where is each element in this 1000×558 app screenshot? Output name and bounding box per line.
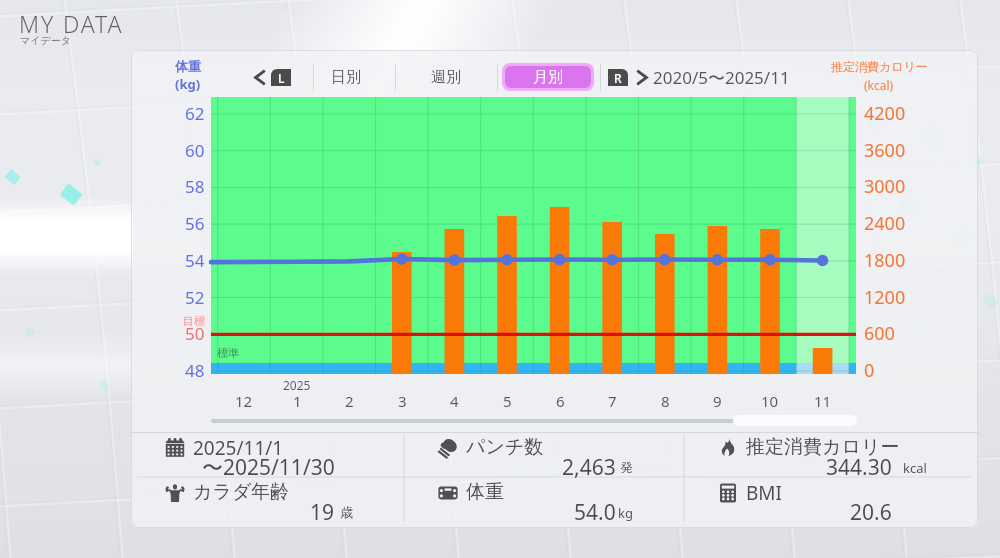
- button[interactable]: R button: [608, 69, 628, 86]
- staticText: 1: [293, 391, 302, 411]
- staticText: 48: [185, 359, 205, 381]
- staticText: 月別: [533, 68, 563, 87]
- staticText: kg: [618, 504, 633, 522]
- staticText: 9: [713, 391, 722, 411]
- staticText: 1200: [864, 285, 906, 307]
- button[interactable]: 日別: [305, 63, 387, 91]
- staticText: (kcal): [864, 77, 894, 93]
- button[interactable]: 体重: [404, 477, 684, 522]
- staticText: 体重: [466, 480, 504, 504]
- staticText: 10: [761, 391, 779, 411]
- staticText: BMI: [746, 480, 783, 506]
- button[interactable]: パンチ数: [404, 432, 684, 477]
- staticText: 11: [814, 391, 832, 411]
- staticText: 標準: [217, 346, 239, 360]
- button[interactable]: 月別: [505, 66, 591, 88]
- button[interactable]: BMI: [684, 477, 978, 522]
- staticText: 歳: [340, 504, 353, 520]
- staticText: 19: [310, 498, 335, 527]
- staticText: (kg): [175, 75, 201, 93]
- staticText: MY DATA: [19, 8, 124, 39]
- staticText: 7: [608, 391, 617, 411]
- button[interactable]: L button: [271, 69, 291, 86]
- staticText: 2025: [283, 377, 311, 393]
- staticText: 発: [620, 459, 633, 475]
- staticText: 3600: [864, 138, 906, 160]
- button[interactable]: Previous page: [252, 69, 268, 86]
- staticText: 56: [185, 212, 205, 234]
- button[interactable]: カラダ年齢: [131, 477, 404, 522]
- staticText: L: [278, 70, 285, 86]
- button[interactable]: 週別: [405, 63, 487, 91]
- staticText: 2: [345, 391, 354, 411]
- staticText: 日別: [331, 68, 361, 87]
- staticText: 推定消費カロリー: [746, 435, 900, 459]
- staticText: 2020/5〜2025/11: [653, 66, 790, 89]
- staticText: パンチ数: [466, 435, 544, 459]
- staticText: 344.30: [826, 453, 892, 482]
- staticText: 54.0: [574, 498, 616, 527]
- staticText: 〜2025/11/30: [202, 453, 335, 482]
- staticText: 4: [450, 391, 459, 411]
- staticText: 52: [185, 286, 205, 308]
- staticText: R: [614, 70, 622, 86]
- staticText: カラダ年齢: [193, 480, 290, 504]
- staticText: 54: [185, 249, 205, 271]
- staticText: kcal: [903, 459, 927, 477]
- staticText: マイデータ: [20, 34, 71, 47]
- staticText: 3000: [864, 174, 906, 196]
- staticText: 12: [235, 391, 253, 411]
- staticText: 推定消費カロリー: [831, 59, 928, 74]
- button[interactable]: 2025/11/1: [131, 432, 404, 477]
- staticText: 62: [185, 102, 205, 124]
- staticText: 週別: [431, 68, 461, 87]
- staticText: 3: [398, 391, 407, 411]
- staticText: 2,463: [562, 453, 616, 482]
- staticText: 8: [661, 391, 670, 411]
- staticText: 20.6: [850, 498, 892, 527]
- staticText: 体重: [175, 58, 201, 74]
- button[interactable]: 推定消費カロリー: [684, 432, 978, 477]
- staticText: 600: [864, 321, 895, 343]
- staticText: 6: [556, 391, 565, 411]
- button[interactable]: Next page: [634, 69, 650, 86]
- staticText: 4200: [864, 101, 906, 123]
- staticText: 0: [864, 358, 875, 380]
- staticText: 1800: [864, 248, 906, 270]
- staticText: 目標: [183, 314, 205, 327]
- staticText: 5: [503, 391, 512, 411]
- staticText: 2400: [864, 211, 906, 233]
- staticText: 58: [185, 175, 205, 197]
- staticText: 50: [185, 322, 205, 344]
- staticText: 60: [185, 139, 205, 161]
- staticText: 2025/11/1: [193, 435, 284, 461]
